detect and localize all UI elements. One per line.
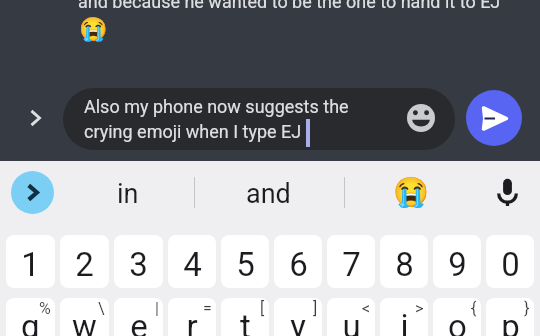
button[interactable]: 6 <box>274 235 322 288</box>
button[interactable]: | <box>114 298 163 336</box>
staticText: p <box>501 307 520 336</box>
staticText: 8 <box>395 245 414 284</box>
staticText: o <box>448 307 467 336</box>
button[interactable]: > <box>380 298 428 336</box>
staticText: 2 <box>75 245 94 284</box>
button[interactable]: = <box>168 298 216 336</box>
staticText: 3 <box>129 245 148 284</box>
button[interactable]: 5 <box>221 235 269 288</box>
staticText: % <box>39 299 51 318</box>
staticText: i <box>400 307 409 336</box>
staticText: and because he wanted to be the one to h… <box>78 0 501 12</box>
staticText: 1 <box>21 245 40 284</box>
button[interactable]: { <box>433 298 481 336</box>
staticText: 7 <box>342 245 361 284</box>
staticText: 9 <box>448 245 467 284</box>
staticText: u <box>342 307 361 336</box>
button[interactable]: Expand actions <box>17 100 53 136</box>
button[interactable]: More suggestions <box>11 171 54 214</box>
staticText: \ <box>98 299 105 318</box>
button[interactable]: 3 <box>114 235 163 288</box>
staticText: Also my phone now suggests the <box>84 96 349 117</box>
staticText: y <box>290 307 306 336</box>
button[interactable]: ] <box>274 298 322 336</box>
staticText: } <box>524 299 530 318</box>
staticText: 😭 <box>393 175 430 209</box>
button[interactable]: < <box>327 298 375 336</box>
staticText: t <box>240 307 251 336</box>
staticText: and <box>246 178 291 210</box>
staticText: 4 <box>183 245 202 284</box>
button[interactable]: Voice input <box>486 171 528 213</box>
button[interactable]: 4 <box>168 235 216 288</box>
staticText: { <box>471 299 477 318</box>
button[interactable]: 8 <box>380 235 428 288</box>
button[interactable]: Emoji suggestion <box>386 169 436 215</box>
button[interactable]: 0 <box>486 235 534 288</box>
staticText: crying emoji when I type EJ <box>84 121 302 142</box>
staticText: ] <box>313 299 318 318</box>
staticText: < <box>362 299 371 318</box>
button[interactable]: 7 <box>327 235 375 288</box>
staticText: | <box>155 299 159 318</box>
staticText: q <box>21 307 40 336</box>
button[interactable]: [ <box>221 298 269 336</box>
staticText: 0 <box>501 245 520 284</box>
staticText: 5 <box>236 245 255 284</box>
button[interactable]: in <box>76 161 176 223</box>
button[interactable]: 1 <box>6 235 55 288</box>
button[interactable]: Send <box>466 90 522 146</box>
button[interactable]: 9 <box>433 235 481 288</box>
button[interactable]: Also my phone now suggests the <box>63 88 455 150</box>
staticText: 😭 <box>79 16 108 43</box>
staticText: = <box>203 299 212 318</box>
button[interactable]: Emoji picker <box>401 98 441 138</box>
staticText: 6 <box>289 245 308 284</box>
button[interactable]: } <box>486 298 534 336</box>
staticText: w <box>72 307 97 336</box>
button[interactable]: \ <box>60 298 109 336</box>
button[interactable]: % <box>6 298 55 336</box>
staticText: > <box>415 299 424 318</box>
staticText: in <box>117 178 139 210</box>
staticText: r <box>186 307 198 336</box>
button[interactable]: 2 <box>60 235 109 288</box>
button[interactable]: and <box>218 161 318 223</box>
staticText: [ <box>260 299 265 318</box>
staticText: e <box>130 307 148 336</box>
